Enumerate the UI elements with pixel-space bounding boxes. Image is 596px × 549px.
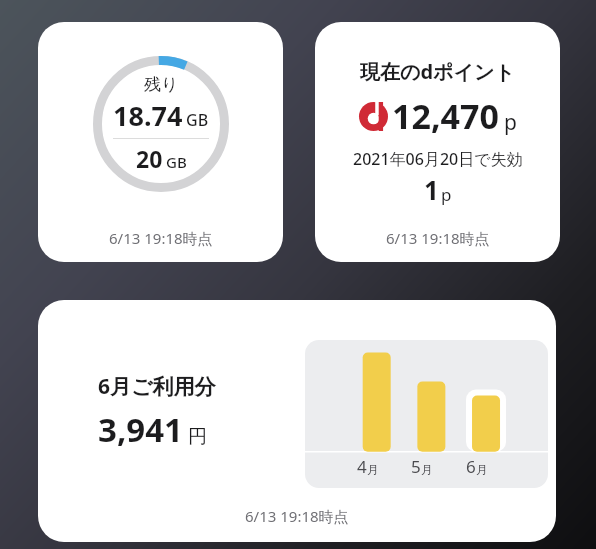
staticText: GB: [166, 152, 187, 172]
other: Monthly usage chart: [305, 340, 548, 488]
staticText: 6/13 19:18時点: [386, 228, 490, 248]
other: Remaining data: [93, 56, 229, 192]
staticText: 12,470: [392, 93, 499, 139]
staticText: 4: [357, 455, 367, 478]
other: d point logo: [359, 102, 388, 131]
button[interactable]: 6月ご利用分: [38, 300, 556, 542]
staticText: GB: [186, 109, 209, 131]
staticText: 2021年06月20日で失効: [353, 148, 523, 170]
staticText: 現在のdポイント: [360, 58, 515, 85]
staticText: 残り: [144, 74, 179, 95]
staticText: 20: [136, 143, 163, 174]
staticText: 6月ご利用分: [98, 372, 216, 401]
staticText: 月: [367, 462, 379, 477]
button[interactable]: Remaining data: [38, 22, 283, 262]
button[interactable]: 現在のdポイント: [315, 22, 560, 262]
staticText: 円: [188, 425, 207, 449]
staticText: p: [504, 108, 517, 137]
staticText: 18.74: [113, 97, 183, 134]
staticText: 6/13 19:18時点: [245, 506, 349, 526]
staticText: 1: [424, 172, 439, 207]
staticText: 3,941: [98, 407, 183, 452]
staticText: 5: [411, 455, 421, 478]
staticText: 月: [421, 462, 433, 477]
staticText: 月: [476, 462, 488, 477]
staticText: 6/13 19:18時点: [109, 228, 213, 248]
staticText: 6: [466, 455, 476, 478]
staticText: p: [441, 183, 452, 206]
